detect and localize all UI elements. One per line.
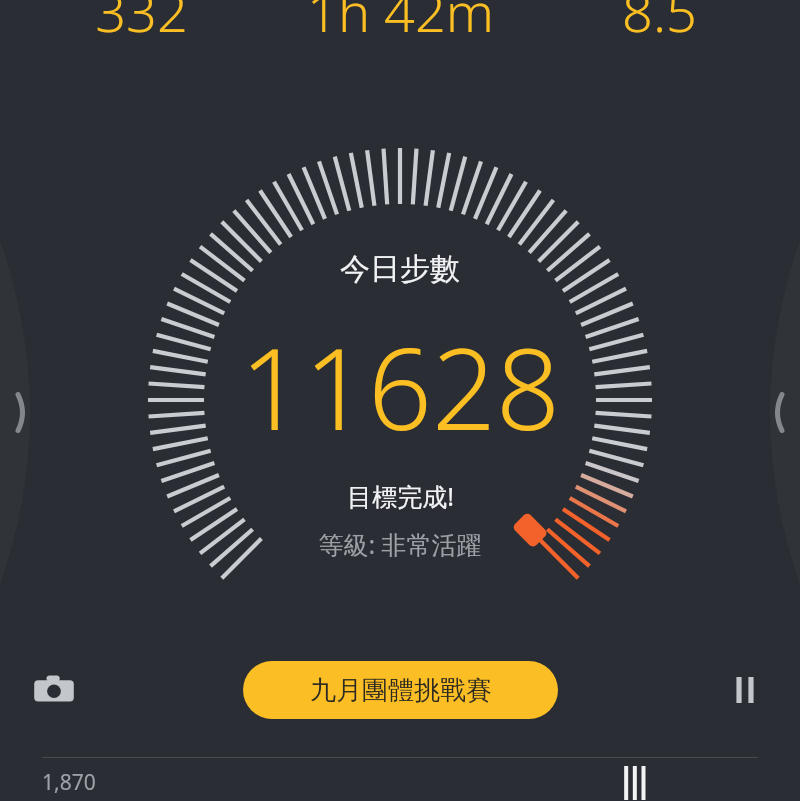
staticText: 1h 42m [307, 0, 494, 48]
staticText: 今日步數 [340, 250, 460, 288]
button[interactable]: Camera [26, 662, 82, 718]
staticText: 目標完成! [347, 479, 454, 513]
button[interactable]: 九月團體挑戰賽 [243, 661, 558, 719]
button[interactable]: Pause [720, 665, 770, 715]
staticText: 11628 [240, 310, 560, 463]
staticText: 等級: 非常活躍 [318, 527, 482, 561]
staticText: 332 [95, 0, 188, 48]
staticText: 8.5 [622, 0, 697, 48]
staticText: 1,870 [42, 768, 96, 797]
staticText: 九月團體挑戰賽 [310, 674, 492, 707]
